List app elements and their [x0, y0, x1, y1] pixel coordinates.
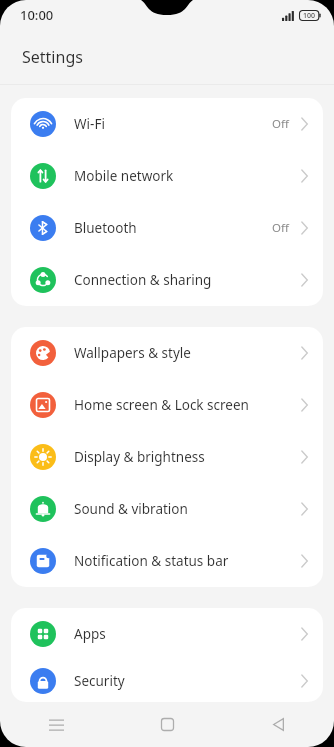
staticText: Wallpapers & style: [74, 344, 301, 362]
button[interactable]: Back: [223, 702, 334, 747]
button[interactable]: Display & brightness: [11, 431, 323, 483]
staticText: Connection & sharing: [74, 271, 301, 289]
staticText: Apps: [74, 625, 301, 643]
staticText: Off: [272, 116, 289, 132]
button[interactable]: Home: [112, 702, 223, 747]
staticText: Wi-Fi: [74, 115, 272, 133]
button[interactable]: Apps: [11, 608, 323, 660]
button[interactable]: Bluetooth: [11, 202, 323, 254]
staticText: 100: [303, 11, 316, 21]
staticText: Home screen & Lock screen: [74, 396, 301, 414]
staticText: Security: [74, 672, 301, 690]
button[interactable]: Security: [11, 660, 323, 702]
button[interactable]: Wi-Fi: [11, 98, 323, 150]
button[interactable]: Home screen & Lock screen: [11, 379, 323, 431]
button[interactable]: Sound & vibration: [11, 483, 323, 535]
staticText: Bluetooth: [74, 219, 272, 237]
staticText: Mobile network: [74, 167, 301, 185]
staticText: Sound & vibration: [74, 500, 301, 518]
staticText: 10:00: [20, 6, 54, 24]
staticText: Notification & status bar: [74, 552, 301, 570]
staticText: Settings: [22, 46, 83, 68]
staticText: Display & brightness: [74, 448, 301, 466]
button[interactable]: Recent apps: [0, 702, 112, 747]
button[interactable]: Wallpapers & style: [11, 327, 323, 379]
button[interactable]: Notification & status bar: [11, 535, 323, 587]
button[interactable]: Mobile network: [11, 150, 323, 202]
button[interactable]: Connection & sharing: [11, 254, 323, 306]
staticText: Off: [272, 220, 289, 236]
